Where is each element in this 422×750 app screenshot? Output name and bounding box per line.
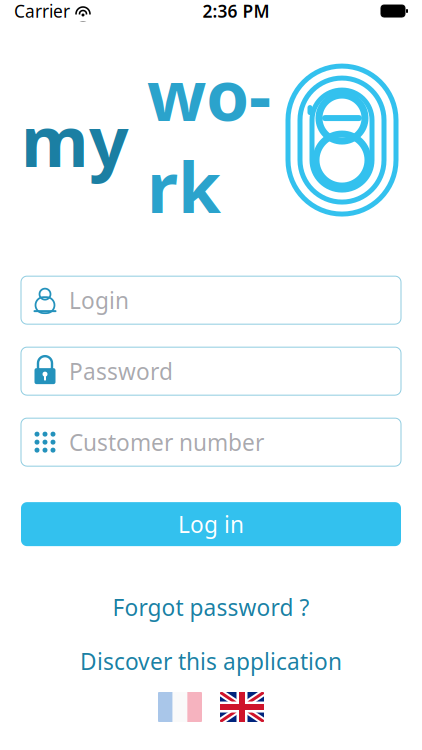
button[interactable]: Discover this application: [64, 640, 358, 682]
staticText: Customer number: [69, 427, 264, 457]
button[interactable]: French: [158, 692, 202, 722]
button[interactable]: Login: [21, 276, 401, 324]
button[interactable]: Customer number: [21, 418, 401, 466]
button[interactable]: English: [220, 692, 264, 722]
staticText: work: [147, 48, 271, 232]
staticText: Carrier: [14, 0, 70, 22]
button[interactable]: Log in: [21, 502, 401, 546]
staticText: Login: [69, 285, 129, 315]
staticText: Log in: [178, 509, 244, 539]
staticText: Forgot password ?: [112, 592, 309, 622]
button[interactable]: Forgot password ?: [96, 586, 325, 628]
staticText: Password: [69, 356, 173, 386]
button[interactable]: Password: [21, 347, 401, 395]
staticText: 2:36 PM: [202, 0, 269, 22]
staticText: Discover this application: [80, 646, 342, 676]
staticText: my: [21, 94, 129, 186]
